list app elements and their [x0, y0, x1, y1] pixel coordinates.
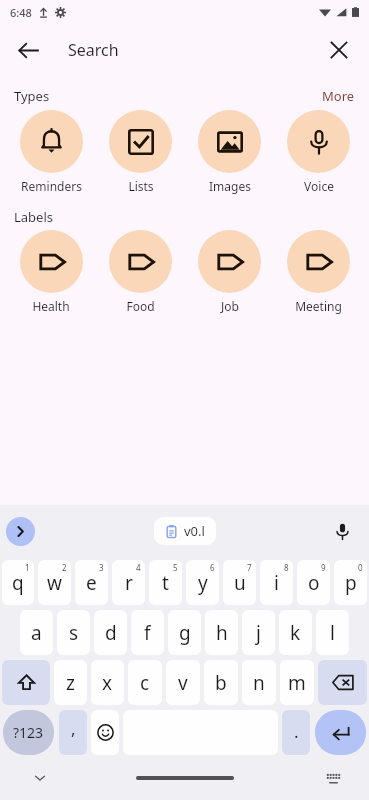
- staticText: v0.l: [184, 522, 205, 540]
- button[interactable]: t: [149, 560, 182, 605]
- staticText: 6:48: [10, 5, 32, 20]
- staticText: i: [274, 570, 279, 596]
- staticText: l: [330, 620, 335, 646]
- staticText: 6: [210, 562, 215, 573]
- staticText: ?123: [13, 723, 44, 742]
- button[interactable]: Voice: [274, 108, 363, 196]
- staticText: z: [66, 670, 75, 696]
- button[interactable]: Close: [319, 30, 359, 70]
- staticText: Meeting: [295, 298, 342, 314]
- button[interactable]: ,: [59, 710, 87, 755]
- staticText: 2: [62, 562, 67, 573]
- staticText: j: [256, 620, 261, 646]
- button[interactable]: Health: [6, 228, 96, 316]
- staticText: q: [12, 570, 24, 596]
- button[interactable]: Job: [185, 228, 274, 316]
- staticText: y: [198, 570, 208, 596]
- staticText: Types: [14, 87, 50, 105]
- button[interactable]: Change keyboard: [319, 764, 347, 792]
- staticText: Health: [32, 298, 70, 314]
- button[interactable]: Lists: [96, 108, 185, 196]
- button[interactable]: h: [205, 610, 238, 655]
- staticText: 1: [25, 562, 30, 573]
- staticText: p: [345, 570, 357, 596]
- staticText: u: [234, 570, 246, 596]
- staticText: v: [178, 670, 188, 696]
- button[interactable]: Images: [185, 108, 274, 196]
- button[interactable]: w: [38, 560, 71, 605]
- staticText: Images: [209, 178, 251, 194]
- button[interactable]: j: [242, 610, 275, 655]
- staticText: f: [144, 620, 151, 646]
- button[interactable]: s: [57, 610, 90, 655]
- staticText: t: [162, 570, 169, 596]
- staticText: m: [288, 670, 306, 696]
- button[interactable]: d: [94, 610, 127, 655]
- button[interactable]: .: [282, 710, 310, 755]
- button[interactable]: ?123: [3, 710, 54, 755]
- button[interactable]: v0.l: [154, 517, 216, 545]
- button[interactable]: c: [128, 660, 162, 705]
- staticText: 8: [284, 562, 289, 573]
- staticText: Voice: [304, 178, 334, 194]
- staticText: Job: [221, 298, 239, 314]
- staticText: d: [105, 620, 117, 646]
- staticText: More: [322, 87, 355, 105]
- button[interactable]: Expand toolbar: [6, 517, 35, 546]
- button[interactable]: Meeting: [274, 228, 363, 316]
- button[interactable]: Backspace: [318, 660, 367, 705]
- button[interactable]: e: [75, 560, 108, 605]
- button[interactable]: i: [260, 560, 293, 605]
- button[interactable]: z: [54, 660, 87, 705]
- button[interactable]: a: [20, 610, 53, 655]
- staticText: a: [31, 620, 42, 646]
- button[interactable]: Enter: [315, 710, 366, 755]
- button[interactable]: Shift: [2, 660, 50, 705]
- button[interactable]: Food: [96, 228, 185, 316]
- button[interactable]: b: [204, 660, 238, 705]
- staticText: Labels: [14, 208, 54, 226]
- staticText: Lists: [128, 178, 154, 194]
- staticText: k: [290, 620, 301, 646]
- button[interactable]: k: [279, 610, 312, 655]
- button[interactable]: r: [112, 560, 145, 605]
- staticText: w: [47, 570, 62, 596]
- staticText: g: [179, 620, 191, 646]
- staticText: 0: [358, 562, 363, 573]
- button[interactable]: n: [242, 660, 276, 705]
- staticText: s: [69, 620, 79, 646]
- staticText: b: [215, 670, 227, 696]
- button[interactable]: q: [2, 560, 34, 605]
- staticText: 5: [173, 562, 178, 573]
- staticText: Reminders: [21, 178, 82, 194]
- button[interactable]: x: [91, 660, 124, 705]
- button[interactable]: Back: [8, 30, 48, 70]
- button[interactable]: Voice input: [327, 516, 357, 546]
- staticText: o: [308, 570, 320, 596]
- button[interactable]: l: [316, 610, 349, 655]
- button[interactable]: o: [297, 560, 330, 605]
- staticText: n: [253, 670, 265, 696]
- staticText: 3: [99, 562, 104, 573]
- staticText: .: [294, 720, 299, 743]
- staticText: x: [102, 670, 113, 696]
- button[interactable]: v: [166, 660, 200, 705]
- staticText: 7: [247, 562, 252, 573]
- button[interactable]: g: [168, 610, 201, 655]
- button[interactable]: y: [186, 560, 219, 605]
- button[interactable]: Reminders: [6, 108, 96, 196]
- button[interactable]: More: [316, 85, 361, 107]
- staticText: 4: [136, 562, 141, 573]
- staticText: c: [140, 670, 150, 696]
- staticText: Food: [126, 298, 155, 314]
- button[interactable]: p: [334, 560, 367, 605]
- button[interactable]: Emoji: [91, 710, 119, 755]
- button[interactable]: u: [223, 560, 256, 605]
- button[interactable]: m: [280, 660, 314, 705]
- button[interactable]: f: [131, 610, 164, 655]
- staticText: 9: [321, 562, 326, 573]
- staticText: ,: [71, 717, 76, 740]
- staticText: h: [216, 620, 228, 646]
- button[interactable]: Hide keyboard: [26, 764, 54, 792]
